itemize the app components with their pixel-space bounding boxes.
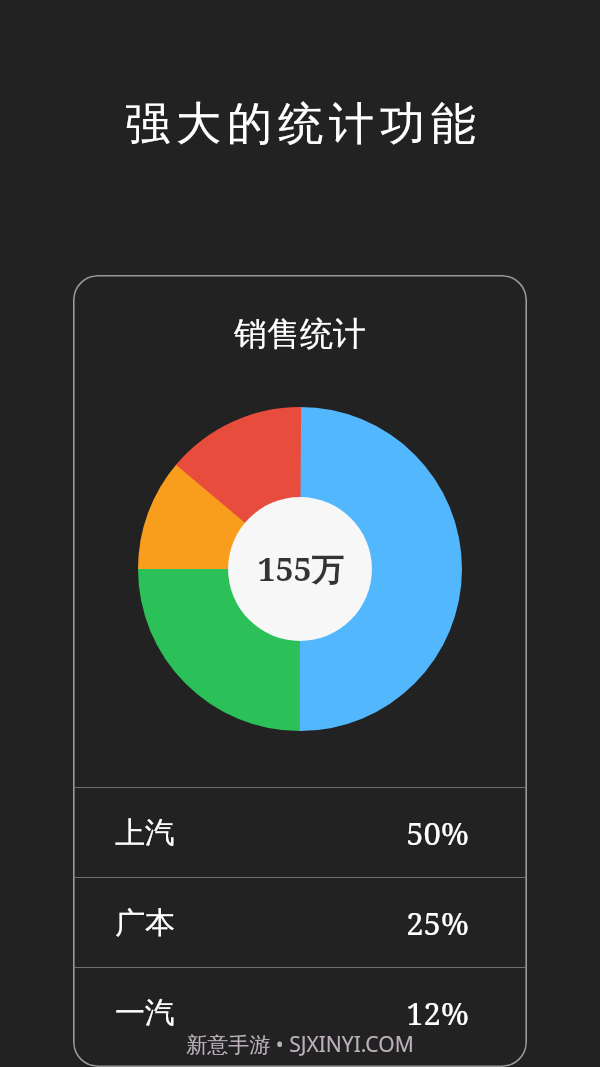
staticText: 销售统计 xyxy=(234,313,366,355)
staticText: 50% xyxy=(406,812,469,854)
staticText: 强大的统计功能 xyxy=(122,96,479,153)
button[interactable]: 一汽 xyxy=(73,968,527,1057)
button[interactable]: 上汽 xyxy=(73,788,527,877)
staticText: 上汽 xyxy=(115,814,175,852)
staticText: 25% xyxy=(406,902,469,944)
staticText: 新意手游 • SJXINYI.COM xyxy=(186,1030,414,1059)
button[interactable]: 销售统计 xyxy=(73,275,527,1067)
staticText: 155万 xyxy=(257,547,344,591)
staticText: 12% xyxy=(406,992,469,1034)
button[interactable]: 广本 xyxy=(73,878,527,967)
staticText: 一汽 xyxy=(115,994,175,1032)
staticText: 广本 xyxy=(115,904,175,942)
